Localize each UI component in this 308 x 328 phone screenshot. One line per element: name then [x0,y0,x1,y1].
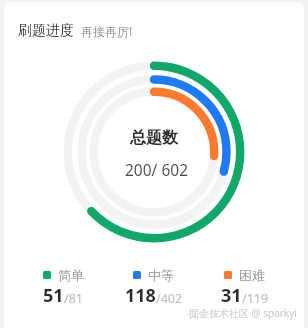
button[interactable]: 困难 [199,267,290,308]
button[interactable]: 简单 [18,267,108,308]
staticText: 31 [221,283,242,308]
staticText: 刷题进度 [18,22,74,40]
staticText: 中等 [148,267,174,283]
staticText: 再接再厉! [81,23,133,39]
button[interactable]: 中等 [108,267,199,308]
staticText: /402 [156,290,183,307]
staticText: 简单 [58,267,84,283]
staticText: /81 [64,290,83,307]
staticText: 掘金技术社区 @ sparkyi [189,306,297,320]
staticText: 51 [43,283,64,308]
staticText: 总题数 [130,128,178,148]
staticText: /119 [242,290,269,307]
staticText: 118 [125,283,156,308]
staticText: 200/ 602 [125,159,188,180]
staticText: 困难 [239,267,265,283]
